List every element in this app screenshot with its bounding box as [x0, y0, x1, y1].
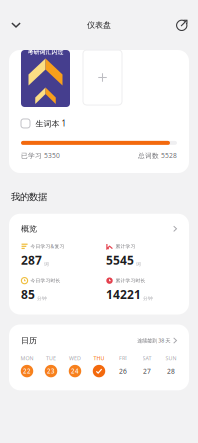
staticText: 生词本 1 — [35, 118, 66, 129]
staticText: THU — [93, 355, 104, 362]
staticText: 考研词汇闪过 — [27, 48, 63, 56]
staticText: 287 — [21, 252, 42, 268]
button[interactable]: 生词本 1 — [21, 107, 177, 129]
staticText: 我的数据 — [11, 191, 47, 203]
staticText: 22 — [23, 367, 31, 375]
staticText: 分钟 — [143, 295, 153, 301]
button[interactable]: Add wordbook — [83, 50, 122, 105]
staticText: FRI — [119, 355, 127, 362]
button[interactable]: 连续签到 38 天 — [137, 337, 177, 344]
staticText: 28 — [167, 366, 175, 376]
staticText: 23 — [47, 367, 55, 375]
staticText: TUE — [46, 355, 56, 362]
staticText: SUN — [165, 355, 176, 362]
staticText: 5545 — [106, 252, 134, 268]
staticText: 日历 — [21, 335, 37, 346]
staticText: 85 — [21, 286, 35, 302]
button[interactable]: 考研词汇闪过 — [21, 50, 70, 107]
staticText: 总词数 5528 — [138, 151, 177, 160]
staticText: 今日学习时长 — [30, 278, 60, 284]
staticText: 26 — [119, 366, 127, 376]
staticText: 14221 — [106, 286, 141, 302]
staticText: 累计学习时长 — [115, 278, 145, 284]
staticText: 累计学习 — [115, 243, 135, 249]
staticText: 词 — [136, 261, 141, 267]
staticText: 分钟 — [37, 295, 47, 301]
staticText: 连续签到 38 天 — [137, 337, 170, 344]
staticText: 已学习 5350 — [21, 151, 60, 160]
staticText: SAT — [142, 355, 151, 362]
staticText: 概览 — [21, 224, 37, 234]
staticText: 24 — [71, 367, 79, 375]
button[interactable]: Share — [170, 14, 194, 36]
staticText: 27 — [143, 366, 151, 376]
button[interactable]: 概览 — [9, 214, 189, 236]
staticText: WED — [69, 355, 81, 362]
staticText: MON — [20, 355, 33, 362]
staticText: 仪表盘 — [87, 20, 111, 30]
button[interactable]: Collapse — [4, 14, 28, 36]
staticText: 今日学习&复习 — [30, 243, 64, 249]
staticText: 词 — [44, 261, 49, 267]
